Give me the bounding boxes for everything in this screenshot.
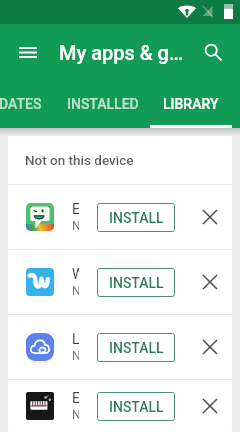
staticText: My apps & games	[59, 41, 188, 64]
button[interactable]: En	[8, 185, 232, 249]
button[interactable]: INSTALL	[97, 268, 175, 297]
button[interactable]: Wi	[8, 250, 232, 314]
button[interactable]: INSTALLED	[55, 80, 150, 128]
staticText: No	[72, 219, 79, 233]
button[interactable]: INSTALL	[97, 392, 175, 421]
staticText: LIBRARY	[163, 96, 219, 112]
button[interactable]: Remove from library	[198, 335, 222, 359]
staticText: Wi	[72, 266, 79, 282]
staticText: INSTALL	[109, 399, 164, 415]
staticText: INSTALLED	[67, 96, 139, 112]
staticText: INSTALL	[109, 210, 164, 226]
button[interactable]: Open navigation menu	[12, 36, 44, 68]
staticText: INSTALL	[109, 275, 164, 291]
staticText: No	[72, 284, 79, 298]
staticText: No	[72, 408, 79, 422]
button[interactable]: Li	[8, 315, 232, 379]
staticText: En	[72, 201, 79, 217]
button[interactable]: Remove from library	[198, 205, 222, 229]
button[interactable]: UPDATES	[0, 80, 55, 128]
button[interactable]: INSTALL	[97, 333, 175, 362]
staticText: Not on this device	[25, 152, 134, 168]
staticText: Li	[72, 331, 79, 347]
button[interactable]: Remove from library	[198, 394, 222, 418]
staticText: No	[72, 349, 79, 363]
button[interactable]: Ep	[8, 380, 232, 432]
button[interactable]: INSTALL	[97, 203, 175, 232]
button[interactable]: Remove from library	[198, 270, 222, 294]
button[interactable]: Search	[197, 36, 229, 68]
staticText: Ep	[72, 390, 79, 406]
button[interactable]: LIBRARY	[150, 80, 232, 128]
staticText: UPDATES	[0, 96, 42, 112]
staticText: INSTALL	[109, 340, 164, 356]
